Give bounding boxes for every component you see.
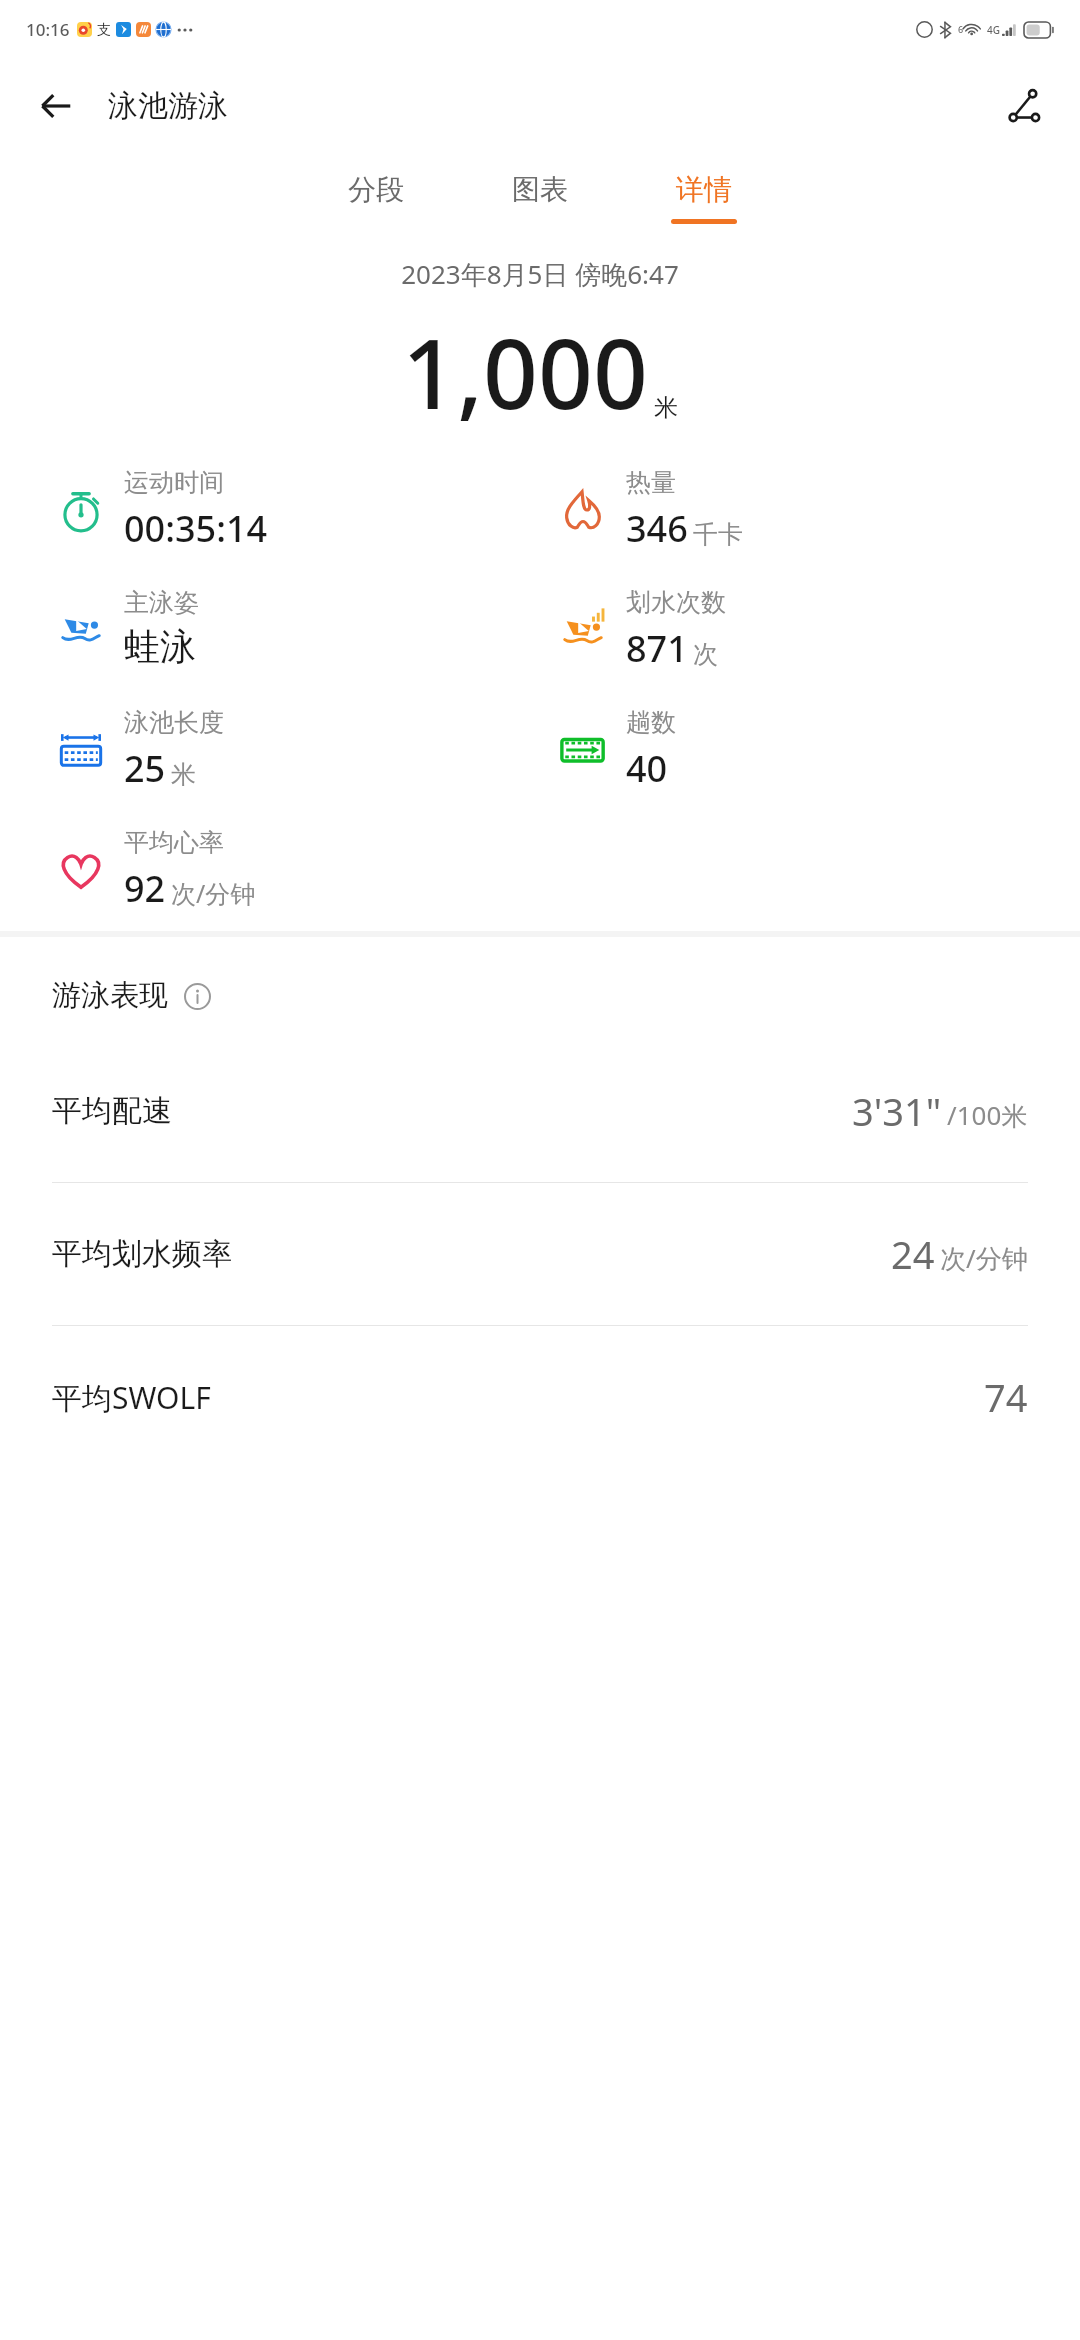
staticText: 346 [626, 504, 688, 553]
staticText: 主泳姿 [124, 587, 199, 618]
staticText: 泳池游泳 [108, 87, 228, 125]
staticText: 平均配速 [52, 1092, 172, 1130]
staticText: 3'31" [852, 1085, 942, 1137]
button[interactable]: Share [992, 74, 1056, 138]
staticText: 871 [626, 624, 688, 673]
staticText: 次/分钟 [940, 1240, 1028, 1276]
button[interactable]: 热量 [554, 467, 743, 553]
staticText: 1,000 [402, 306, 648, 437]
staticText: 25 [124, 744, 166, 793]
staticText: 蛙泳 [124, 624, 196, 669]
staticText: 千卡 [693, 519, 743, 550]
button[interactable]: 趟数 [554, 707, 676, 793]
staticText: 分段 [348, 172, 404, 207]
staticText: 4G [987, 23, 1000, 37]
staticText: 00:35:14 [124, 504, 268, 553]
button[interactable]: 详情 [665, 168, 743, 228]
staticText: 图表 [512, 172, 568, 207]
staticText: 米 [171, 759, 196, 790]
staticText: 24 [891, 1228, 935, 1280]
staticText: 泳池长度 [124, 707, 224, 738]
staticText: 划水次数 [626, 587, 726, 618]
staticText: 40 [626, 744, 668, 793]
staticText: 运动时间 [124, 467, 224, 498]
staticText: /100米 [947, 1097, 1028, 1133]
staticText: 2023年8月5日 傍晚6:47 [401, 256, 679, 292]
button[interactable]: 泳池长度 [52, 707, 224, 793]
staticText: 趟数 [626, 707, 676, 738]
staticText: 米 [654, 393, 678, 423]
staticText: 热量 [626, 467, 676, 498]
staticText: 平均SWOLF [52, 1377, 211, 1418]
staticText: 92 [124, 864, 166, 913]
staticText: 支 [97, 21, 111, 39]
staticText: 次/分钟 [171, 876, 256, 910]
button[interactable]: Info [180, 979, 214, 1013]
button[interactable]: 主泳姿 [52, 587, 199, 669]
staticText: 6 [958, 23, 964, 35]
staticText: 次 [693, 639, 718, 670]
button[interactable]: 平均划水频率 [0, 1182, 1080, 1325]
staticText: 10:16 [26, 18, 70, 41]
button[interactable]: 图表 [501, 168, 579, 228]
button[interactable]: 平均配速 [0, 1040, 1080, 1182]
staticText: 详情 [676, 172, 732, 207]
staticText: 游泳表现 [52, 977, 168, 1014]
staticText: 74 [984, 1371, 1028, 1423]
button[interactable]: 平均心率 [52, 827, 256, 913]
button[interactable]: 运动时间 [52, 467, 268, 553]
staticText: 平均心率 [124, 827, 224, 858]
button[interactable]: 平均SWOLF [0, 1325, 1080, 1468]
staticText: 平均划水频率 [52, 1235, 232, 1273]
button[interactable]: 划水次数 [554, 587, 726, 673]
button[interactable]: 分段 [337, 168, 415, 228]
button[interactable]: Back [24, 74, 88, 138]
